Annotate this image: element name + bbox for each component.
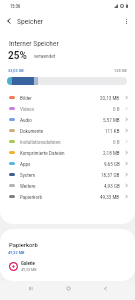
staticText: 49,33 MB [21,267,37,272]
button[interactable]: System [0,169,135,180]
button[interactable]: Dokumente [0,125,135,136]
staticText: 9,65 GB [104,161,120,167]
staticText: 2,18 MB [103,150,120,156]
button[interactable]: Komprimierte Dateien [0,147,135,158]
staticText: 15:36 [10,4,21,9]
staticText: 33,03 GB [8,68,24,73]
button[interactable]: Zurück [97,281,113,295]
staticText: verwendet [34,53,56,59]
staticText: Weitere [20,183,36,189]
button[interactable]: Weitere [0,180,135,191]
button[interactable]: Bilder [0,92,135,103]
staticText: 20,13 MB [100,95,120,101]
staticText: Galerie [21,260,35,266]
button[interactable]: Videos [0,103,135,114]
staticText: Interner Speicher [9,39,59,48]
staticText: 4,93 GB [104,183,120,189]
staticText: 0 B [113,106,120,112]
staticText: 49,33 MB [100,194,120,200]
staticText: 128 GB [114,68,127,73]
staticText: 25% [8,50,27,62]
staticText: Bilder [20,95,32,101]
staticText: Dokumente [20,128,44,134]
staticText: 49,32 MB [8,250,25,255]
staticText: 5,57 MB [103,117,120,123]
button[interactable]: Letzte Apps [22,281,38,295]
staticText: System [20,172,36,178]
staticText: Apps [20,161,31,167]
button[interactable]: Audio [0,114,135,125]
button[interactable]: Papierkorb [0,191,135,202]
staticText: 18,37 GB [101,172,120,178]
staticText: Installationsdateien [20,139,61,145]
staticText: Papierkorb [9,242,38,249]
staticText: Speicher [17,17,44,26]
button[interactable]: Apps [0,158,135,169]
staticText: Papierkorb [20,194,43,200]
button[interactable]: Zurück [0,12,18,30]
staticText: 0 B [113,139,120,145]
button[interactable]: Galerie [0,259,135,273]
button[interactable]: Installationsdateien [0,136,135,147]
staticText: Videos [20,106,35,112]
staticText: Audio [20,117,32,123]
staticText: 111 KB [105,128,120,134]
button[interactable]: Startbildschirm [60,281,76,295]
staticText: Komprimierte Dateien [20,150,65,156]
button[interactable]: Weitere Optionen [117,12,135,30]
